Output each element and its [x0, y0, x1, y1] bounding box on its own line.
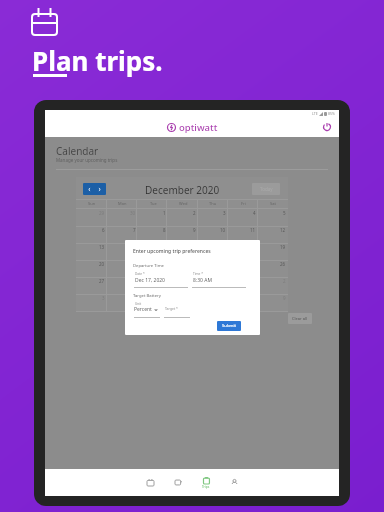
button[interactable]: 27 — [76, 277, 107, 294]
button[interactable]: 12 — [258, 226, 288, 243]
button[interactable]: 5 — [138, 294, 168, 311]
button[interactable]: Clear all — [288, 313, 312, 324]
staticText: 26 — [280, 261, 286, 267]
staticText: Tue — [150, 201, 157, 206]
button[interactable]: Submit — [217, 321, 241, 331]
button[interactable]: 2 — [168, 209, 198, 226]
button[interactable]: Previous month — [83, 183, 106, 195]
staticText: 2 — [283, 278, 286, 284]
button[interactable]: 13 — [76, 243, 107, 260]
staticText: 29 — [99, 210, 105, 216]
other: Previous month — [87, 187, 92, 192]
staticText: Dec 17, 2020 — [135, 277, 165, 284]
button[interactable]: 7 — [107, 226, 138, 243]
button[interactable]: 17 — [198, 243, 228, 260]
button[interactable]: 6 — [168, 294, 198, 311]
button[interactable]: 30 — [168, 277, 198, 294]
button[interactable]: 21 — [107, 260, 138, 277]
button[interactable]: 24 — [198, 260, 228, 277]
button[interactable]: 10 — [198, 226, 228, 243]
staticText: 8 — [163, 227, 166, 233]
button[interactable]: 19 — [258, 243, 288, 260]
staticText: 11 — [250, 227, 256, 233]
staticText: Mon — [118, 201, 127, 206]
staticText: 7 — [133, 227, 136, 233]
button[interactable]: 29 — [138, 277, 168, 294]
staticText: Time * — [193, 272, 203, 276]
button[interactable]: Power — [320, 120, 334, 134]
staticText: Wed — [179, 201, 188, 206]
staticText: Unit — [135, 302, 142, 306]
staticText: Manage your upcoming trips — [56, 157, 118, 163]
button[interactable]: Add trip — [189, 316, 208, 335]
button[interactable]: 6 — [76, 226, 107, 243]
button[interactable]: 3 — [198, 209, 228, 226]
button[interactable]: 20 — [76, 260, 107, 277]
staticText: 29 — [160, 278, 166, 284]
staticText: 22 — [160, 261, 166, 267]
staticText: 16 — [190, 244, 196, 250]
staticText: 13 — [99, 244, 105, 250]
button[interactable]: 31 — [198, 277, 228, 294]
staticText: Departure Time — [133, 263, 164, 269]
button[interactable]: 4 — [107, 294, 138, 311]
staticText: Date * — [135, 272, 145, 276]
staticText: LTE — [312, 111, 318, 116]
button[interactable]: 1 — [228, 277, 258, 294]
staticText: 12 — [280, 227, 286, 233]
button[interactable]: Profile — [223, 469, 245, 496]
button[interactable]: 26 — [258, 260, 288, 277]
button[interactable]: 22 — [138, 260, 168, 277]
button[interactable]: Home — [139, 469, 161, 496]
staticText: 14 — [130, 244, 136, 250]
staticText: 4 — [133, 295, 136, 301]
staticText: 21 — [130, 261, 136, 267]
staticText: 19 — [280, 244, 286, 250]
staticText: December 2020 — [145, 183, 220, 197]
button[interactable]: 15 — [138, 243, 168, 260]
button[interactable]: Trips — [195, 469, 217, 496]
button[interactable]: 8 — [138, 226, 168, 243]
button[interactable]: 2 — [258, 277, 288, 294]
staticText: Thu — [209, 201, 217, 206]
button[interactable]: 16 — [168, 243, 198, 260]
staticText: 4 — [253, 210, 256, 216]
staticText: Target * — [165, 306, 178, 311]
button[interactable]: 11 — [228, 226, 258, 243]
button[interactable]: 3 — [76, 294, 107, 311]
staticText: Clear all — [292, 316, 308, 321]
button[interactable]: 14 — [107, 243, 138, 260]
staticText: Plan trips. — [32, 43, 163, 78]
button[interactable]: 28 — [107, 277, 138, 294]
button[interactable]: 9 — [168, 226, 198, 243]
staticText: 30 — [130, 210, 136, 216]
button[interactable]: 4 — [228, 209, 258, 226]
staticText: Trips — [202, 485, 210, 489]
button[interactable]: Charging — [167, 469, 189, 496]
staticText: 9 — [193, 227, 196, 233]
staticText: Sat — [270, 201, 276, 206]
staticText: 5 — [283, 210, 286, 216]
button[interactable]: 23 — [168, 260, 198, 277]
button[interactable]: 9 — [258, 294, 288, 311]
staticText: 10 — [220, 227, 226, 233]
